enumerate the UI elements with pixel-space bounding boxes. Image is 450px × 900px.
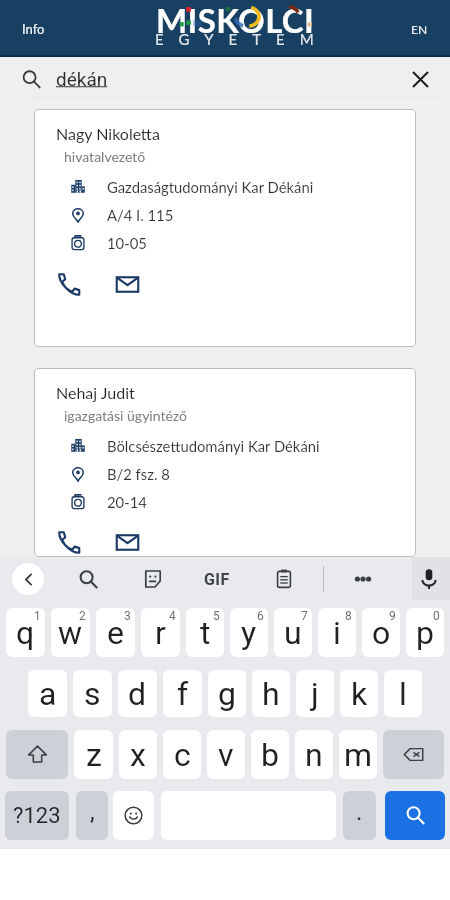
button[interactable]: a bbox=[28, 670, 67, 717]
staticText: Info bbox=[22, 21, 45, 37]
staticText: EGYETEM bbox=[155, 30, 329, 47]
button[interactable]: w bbox=[51, 608, 90, 657]
button[interactable]: x bbox=[119, 730, 157, 779]
staticText: u bbox=[284, 614, 302, 652]
button[interactable]: i bbox=[318, 608, 356, 657]
button[interactable]: Clear search bbox=[403, 62, 437, 96]
staticText: ?123 bbox=[13, 803, 61, 829]
staticText: t bbox=[200, 614, 211, 652]
button[interactable]: Call bbox=[52, 527, 84, 557]
staticText: p bbox=[416, 614, 434, 652]
staticText: 7 bbox=[301, 609, 308, 623]
staticText: a bbox=[39, 675, 57, 713]
button[interactable]: g bbox=[208, 670, 246, 717]
button[interactable]: Emoji bbox=[113, 791, 154, 840]
button[interactable]: Voice input bbox=[412, 562, 446, 596]
staticText: 3 bbox=[124, 609, 131, 623]
button[interactable]: k bbox=[340, 670, 378, 717]
button[interactable]: Nehaj Judit bbox=[34, 368, 416, 557]
button[interactable]: , bbox=[76, 791, 108, 840]
staticText: s bbox=[84, 675, 101, 713]
staticText: h bbox=[262, 675, 280, 713]
button[interactable]: q bbox=[6, 608, 45, 657]
button[interactable]: s bbox=[73, 670, 112, 717]
button[interactable]: Stickers bbox=[136, 562, 170, 596]
button[interactable]: Search bbox=[385, 791, 445, 840]
staticText: 5 bbox=[213, 609, 220, 623]
staticText: c bbox=[174, 736, 191, 774]
button[interactable]: Back bbox=[12, 563, 44, 595]
staticText: 0 bbox=[433, 609, 440, 623]
button[interactable]: y bbox=[230, 608, 268, 657]
staticText: q bbox=[16, 614, 35, 652]
staticText: r bbox=[155, 614, 166, 652]
button[interactable]: Backspace bbox=[383, 730, 444, 779]
staticText: , bbox=[90, 798, 95, 826]
staticText: 20-14 bbox=[107, 493, 147, 511]
button[interactable]: u bbox=[274, 608, 312, 657]
staticText: 4 bbox=[169, 609, 176, 623]
button[interactable]: Nagy Nikoletta bbox=[34, 109, 416, 347]
staticText: 2 bbox=[79, 609, 86, 623]
button[interactable]: Info bbox=[13, 14, 54, 44]
staticText: l bbox=[399, 675, 407, 713]
button[interactable]: Email bbox=[111, 268, 143, 300]
staticText: Nagy Nikoletta bbox=[56, 124, 160, 143]
button[interactable]: b bbox=[251, 730, 289, 779]
button[interactable]: More options bbox=[346, 562, 380, 596]
button[interactable]: l bbox=[384, 670, 422, 717]
staticText: m bbox=[344, 736, 373, 774]
button[interactable]: z bbox=[74, 730, 113, 779]
button[interactable]: n bbox=[295, 730, 333, 779]
button[interactable]: m bbox=[339, 730, 377, 779]
staticText: o bbox=[372, 614, 391, 652]
staticText: dékán bbox=[56, 68, 108, 90]
staticText: EN bbox=[411, 22, 428, 36]
staticText: . bbox=[356, 798, 363, 826]
button[interactable]: d bbox=[118, 670, 157, 717]
button[interactable]: GIF bbox=[200, 562, 234, 596]
staticText: GIF bbox=[204, 570, 230, 589]
staticText: Gazdaságtudományi Kar Dékáni bbox=[107, 178, 314, 196]
staticText: b bbox=[261, 736, 279, 774]
staticText: n bbox=[305, 736, 323, 774]
staticText: hivatalvezető bbox=[64, 148, 146, 165]
button[interactable]: Shift bbox=[6, 730, 68, 779]
button[interactable]: o bbox=[362, 608, 400, 657]
button[interactable]: ?123 bbox=[5, 791, 69, 840]
button[interactable]: . bbox=[343, 791, 376, 840]
staticText: 9 bbox=[389, 609, 396, 623]
button[interactable]: j bbox=[296, 670, 334, 717]
button[interactable]: Clipboard bbox=[267, 562, 301, 596]
staticText: v bbox=[218, 736, 234, 774]
staticText: 6 bbox=[257, 609, 264, 623]
button[interactable]: e bbox=[96, 608, 135, 657]
button[interactable]: Call bbox=[52, 268, 84, 300]
staticText: MISKOLCI bbox=[156, 0, 315, 40]
staticText: x bbox=[130, 736, 146, 774]
staticText: z bbox=[86, 736, 102, 774]
staticText: f bbox=[177, 675, 189, 713]
staticText: 10-05 bbox=[107, 234, 147, 252]
button[interactable]: r bbox=[141, 608, 180, 657]
staticText: Nehaj Judit bbox=[56, 383, 135, 402]
button[interactable]: f bbox=[163, 670, 202, 717]
button[interactable]: h bbox=[252, 670, 290, 717]
button[interactable]: p bbox=[406, 608, 444, 657]
button[interactable]: EN bbox=[402, 15, 437, 43]
staticText: k bbox=[351, 675, 368, 713]
button[interactable]: t bbox=[186, 608, 224, 657]
button[interactable]: Search bbox=[71, 562, 105, 596]
button[interactable]: Email bbox=[111, 527, 143, 557]
button[interactable]: v bbox=[207, 730, 245, 779]
button[interactable]: c bbox=[163, 730, 201, 779]
staticText: d bbox=[128, 675, 147, 713]
staticText: 8 bbox=[345, 609, 352, 623]
staticText: w bbox=[58, 614, 83, 652]
staticText: igazgatási ügyintéző bbox=[64, 407, 187, 424]
staticText: 1 bbox=[34, 609, 41, 623]
staticText: e bbox=[107, 614, 124, 652]
staticText: g bbox=[218, 675, 236, 713]
staticText: Bölcsészettudományi Kar Dékáni bbox=[107, 437, 320, 455]
